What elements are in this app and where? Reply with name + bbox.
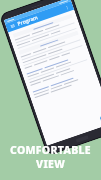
staticText: COMFORTABLE bbox=[10, 143, 91, 157]
button[interactable]: Add bbox=[99, 114, 101, 124]
button[interactable]: Menu bbox=[0, 0, 101, 156]
button[interactable] bbox=[19, 31, 78, 55]
button[interactable]: Menu bbox=[9, 23, 16, 29]
staticText: Program bbox=[17, 14, 39, 28]
button[interactable]: Menu bbox=[5, 1, 74, 32]
button[interactable]: More options bbox=[65, 5, 70, 10]
staticText: VIEW bbox=[36, 157, 65, 171]
button[interactable] bbox=[13, 14, 73, 38]
